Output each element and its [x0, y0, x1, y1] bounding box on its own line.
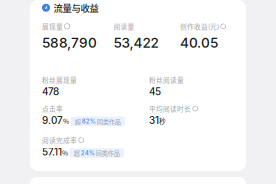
staticText: 超: [75, 117, 81, 126]
staticText: 同类作品: [96, 148, 120, 157]
staticText: 57.11: [42, 146, 62, 158]
staticText: 82%: [82, 118, 96, 125]
staticText: %: [63, 116, 69, 126]
staticText: 31: [149, 114, 159, 126]
staticText: 阅读完成率: [42, 135, 77, 145]
staticText: 展现量: [42, 21, 63, 31]
staticText: 粉丝展现量: [42, 75, 77, 85]
staticText: 秒: [159, 116, 166, 126]
staticText: 53,422: [113, 35, 158, 51]
staticText: 超: [74, 148, 80, 157]
staticText: 同类作品: [97, 117, 121, 126]
staticText: 阅读量: [113, 21, 134, 31]
staticText: 478: [42, 86, 59, 98]
staticText: 9.07: [42, 114, 63, 126]
staticText: 40.05: [180, 35, 218, 51]
staticText: 45: [149, 86, 161, 98]
staticText: 粉丝阅读量: [149, 75, 184, 85]
staticText: 24%: [81, 149, 95, 157]
staticText: 平均阅读时长: [149, 104, 191, 113]
button[interactable]: 流量与收益: [42, 0, 98, 14]
staticText: 创作收益(元): [180, 21, 219, 31]
staticText: 588,790: [42, 35, 97, 51]
staticText: 点击率: [42, 104, 63, 113]
staticText: 流量与收益: [53, 1, 98, 14]
staticText: %: [62, 148, 68, 157]
